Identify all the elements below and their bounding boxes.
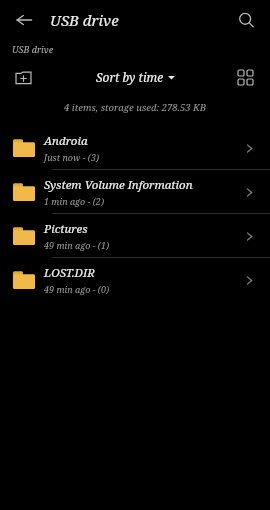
button[interactable]: Pictures — [0, 214, 270, 257]
staticText: 1 min ago - (2) — [44, 195, 105, 207]
button[interactable]: System Volume Information — [0, 170, 270, 213]
button[interactable]: Search — [230, 4, 262, 36]
staticText: 49 min ago - (0) — [44, 283, 110, 295]
staticText: Pictures — [44, 221, 88, 237]
staticText: Androia — [44, 133, 88, 149]
staticText: 4 items, storage used: 278.53 KB — [64, 101, 206, 114]
staticText: Sort by time — [96, 69, 164, 85]
staticText: Just now - (3) — [44, 151, 100, 163]
button[interactable]: Sort by time — [90, 65, 181, 89]
button[interactable]: Grid view — [230, 62, 260, 92]
button[interactable]: LOST.DIR — [0, 258, 270, 301]
staticText: System Volume Information — [44, 177, 193, 193]
button[interactable]: Back — [8, 4, 40, 36]
button[interactable]: Androia — [0, 126, 270, 169]
button[interactable]: USB drive — [12, 40, 270, 58]
button[interactable]: New folder — [8, 62, 38, 92]
staticText: LOST.DIR — [44, 265, 95, 281]
staticText: USB drive — [50, 10, 119, 30]
staticText: USB drive — [12, 43, 54, 55]
staticText: 49 min ago - (1) — [44, 239, 110, 251]
